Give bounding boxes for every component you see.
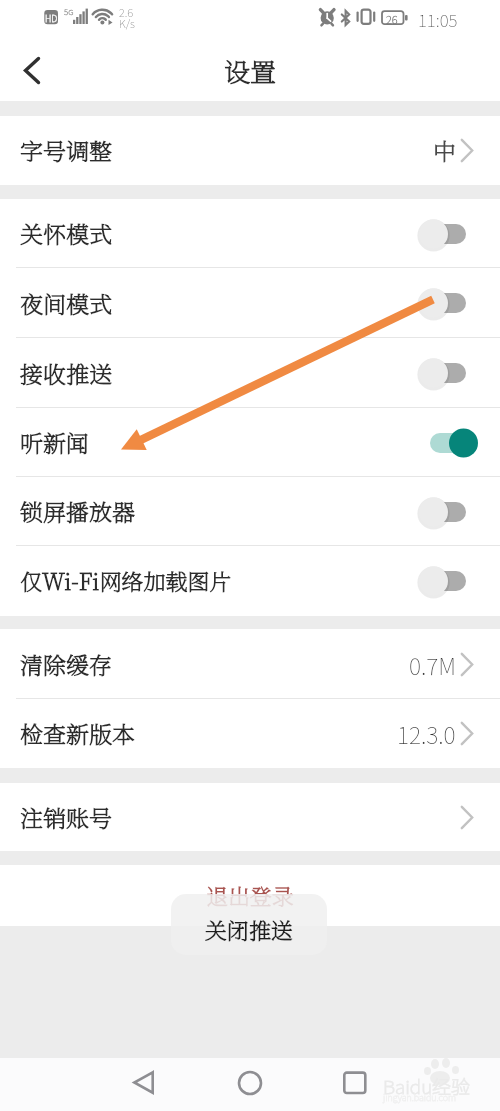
button[interactable]: 关怀模式 [0,199,500,268]
button[interactable]: 接收推送 [0,338,500,408]
staticText: 关闭推送 [205,914,294,946]
button[interactable]: 返回 [0,40,63,101]
staticText: 2.6 K/s [119,4,135,31]
button[interactable]: 锁屏播放器 [0,477,500,546]
staticText: 接收推送 [20,357,112,390]
staticText: Baidu经验 [383,1072,471,1100]
staticText: 关怀模式 [20,217,112,250]
staticText: 设置 [224,52,277,89]
staticText: 清除缓存 [20,648,112,681]
staticText: 0.7M [409,648,456,681]
button[interactable]: 最近任务 [330,1058,380,1107]
staticText: 12.3.0 [397,717,456,750]
button[interactable]: 退出登录 [0,865,500,926]
staticText: 字号调整 [20,134,112,167]
staticText: 锁屏播放器 [20,495,135,528]
staticText: 听新闻 [20,426,89,459]
staticText: 5G [64,6,74,18]
staticText: 注销账号 [20,801,112,834]
staticText: 中 [433,134,456,167]
button[interactable]: 返回 [118,1058,168,1107]
staticText: HD [45,12,58,25]
staticText: 夜间模式 [20,287,112,320]
button[interactable]: 注销账号 [0,783,500,851]
staticText: 26 [386,11,398,27]
button[interactable]: 主页 [225,1058,275,1107]
button[interactable]: 检查新版本 [0,699,500,768]
staticText: jingyan.baidu.com [383,1091,457,1104]
button[interactable]: 字号调整 [0,116,500,185]
staticText: 11:05 [418,7,458,32]
button[interactable]: 仅Wi-Fi网络加载图片 [0,546,500,616]
staticText: 检查新版本 [20,717,135,750]
staticText: 退出登录 [206,880,295,912]
button[interactable]: 夜间模式 [0,268,500,338]
button[interactable]: 清除缓存 [0,629,500,699]
button[interactable]: 听新闻 [0,408,500,477]
staticText: 仅Wi-Fi网络加载图片 [20,565,232,597]
